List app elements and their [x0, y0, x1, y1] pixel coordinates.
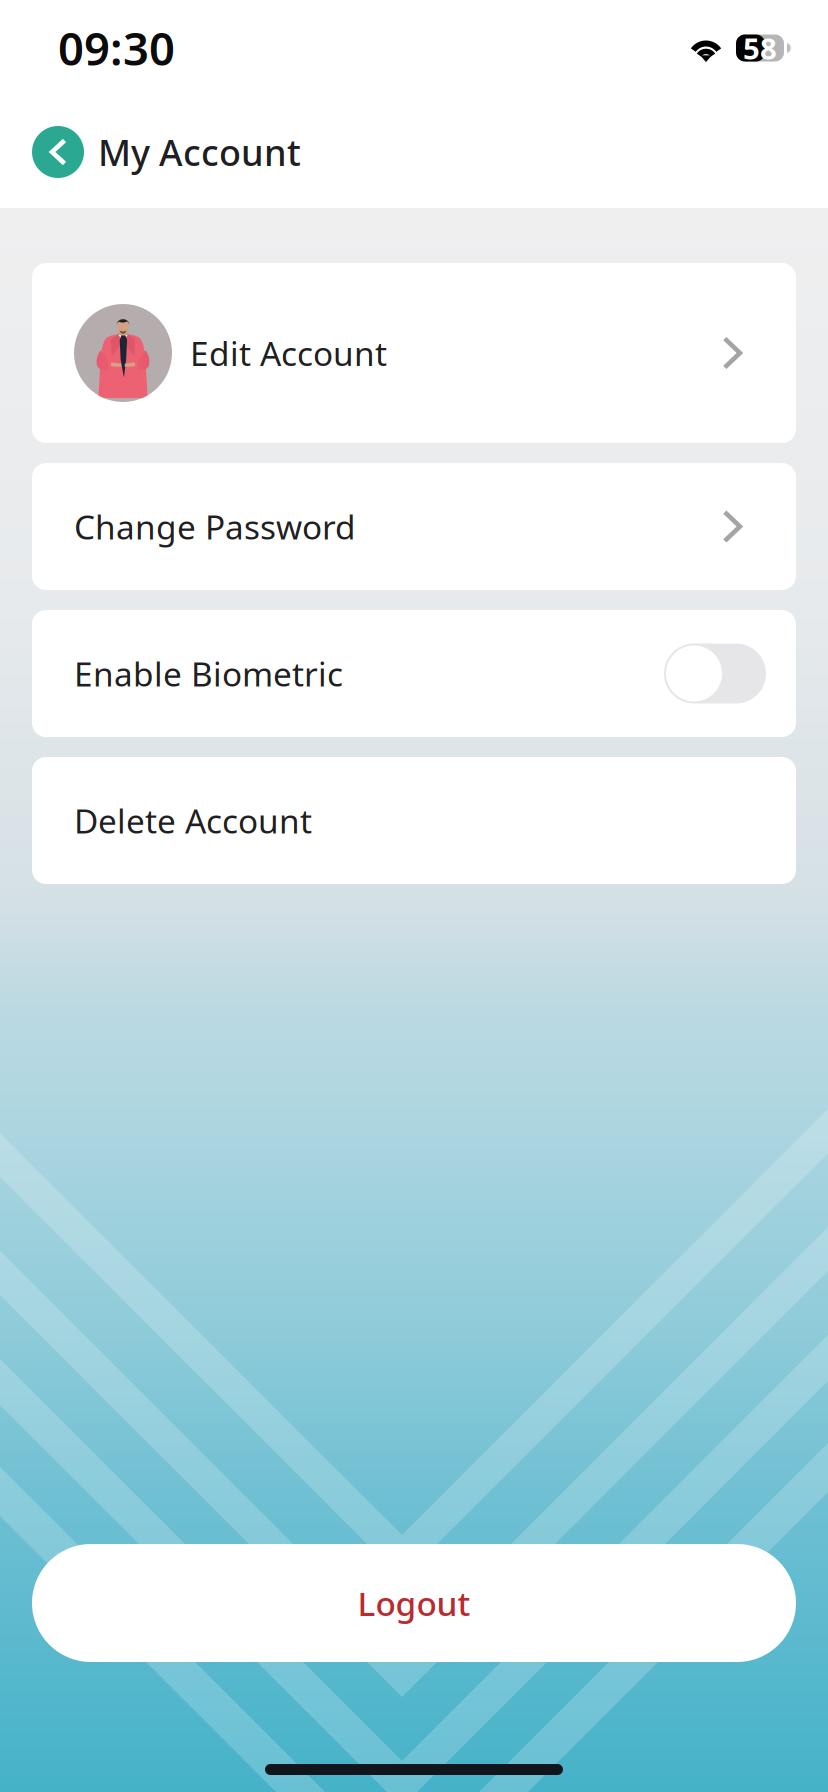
staticText: 58 [743, 28, 777, 67]
staticText: Change Password [74, 504, 356, 549]
button[interactable]: Delete Account [32, 757, 796, 884]
button[interactable]: Back [32, 126, 84, 178]
staticText: Enable Biometric [74, 651, 343, 696]
button[interactable]: Enable Biometric [32, 610, 796, 737]
staticText: My Account [98, 128, 301, 176]
button[interactable]: Edit Account [32, 263, 796, 443]
staticText: 09:30 [58, 18, 175, 78]
button[interactable]: Change Password [32, 463, 796, 590]
staticText: Edit Account [190, 331, 387, 375]
staticText: Logout [357, 1581, 470, 1625]
button[interactable]: Logout [32, 1544, 796, 1662]
staticText: Delete Account [74, 798, 312, 843]
